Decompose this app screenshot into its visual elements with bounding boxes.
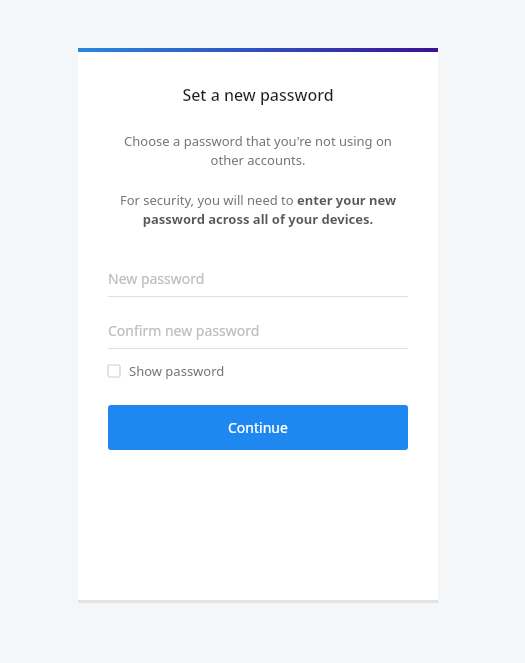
button[interactable]: Show password	[108, 359, 225, 383]
button[interactable]: Confirm new password	[108, 316, 408, 349]
staticText: Choose a password that you're not using …	[108, 132, 408, 169]
staticText: New password	[108, 269, 205, 288]
staticText: Show password	[129, 362, 225, 380]
staticText: Set a new password	[182, 84, 334, 106]
button[interactable]: New password	[108, 264, 408, 297]
button[interactable]: Continue	[108, 405, 408, 450]
staticText: For security, you will need to enter you…	[106, 191, 410, 228]
staticText: Continue	[228, 418, 288, 437]
staticText: Confirm new password	[108, 321, 260, 340]
